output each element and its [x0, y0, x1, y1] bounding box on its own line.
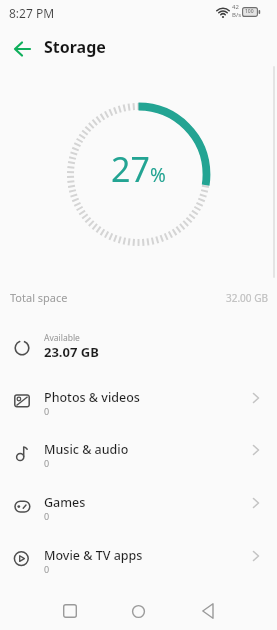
staticText: Photos & videos: [44, 389, 140, 406]
staticText: Music & audio: [44, 441, 129, 458]
button[interactable]: [185, 594, 229, 630]
staticText: 100: [245, 8, 254, 15]
staticText: 0: [44, 405, 50, 417]
staticText: 23.07 GB: [44, 343, 99, 361]
button[interactable]: Available: [0, 320, 277, 373]
button[interactable]: Movie & TV apps: [0, 531, 277, 584]
button[interactable]: [8, 35, 38, 63]
staticText: 0: [44, 563, 50, 575]
staticText: 32.00 GB: [226, 291, 268, 305]
staticText: 0: [44, 510, 50, 522]
staticText: %: [150, 162, 166, 188]
staticText: 42: [232, 3, 239, 11]
button[interactable]: Photos & videos: [0, 373, 277, 426]
staticText: Total space: [10, 290, 68, 305]
button[interactable]: [48, 594, 92, 630]
staticText: 8:27 PM: [9, 5, 55, 21]
staticText: Movie & TV apps: [44, 547, 143, 564]
staticText: 0: [44, 457, 50, 469]
staticText: Storage: [44, 36, 106, 58]
staticText: B/s: [232, 11, 242, 19]
staticText: Games: [44, 494, 86, 511]
staticText: Available: [44, 332, 80, 344]
staticText: 27: [111, 146, 150, 192]
button[interactable]: Games: [0, 478, 277, 531]
button[interactable]: [116, 594, 160, 630]
button[interactable]: Music & audio: [0, 425, 277, 478]
